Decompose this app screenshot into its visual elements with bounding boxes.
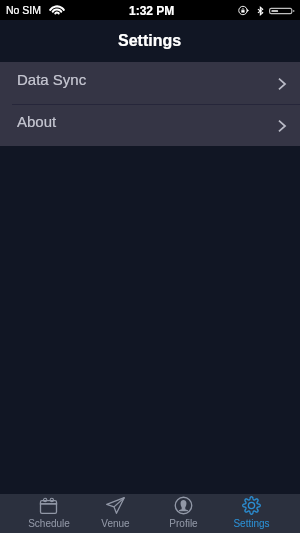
button[interactable]: Schedule xyxy=(15,494,82,533)
button[interactable]: Data Sync xyxy=(0,62,300,104)
staticText: 1:32 PM xyxy=(129,4,175,17)
staticText: Settings xyxy=(118,32,182,50)
button[interactable]: About xyxy=(0,104,300,146)
staticText: No SIM xyxy=(6,4,42,16)
staticText: Venue xyxy=(101,518,130,529)
button[interactable]: Settings xyxy=(217,494,285,533)
staticText: Data Sync xyxy=(17,71,87,88)
staticText: About xyxy=(17,113,57,130)
staticText: Schedule xyxy=(28,518,70,529)
button[interactable]: Profile xyxy=(149,494,217,533)
staticText: Settings xyxy=(233,518,270,529)
button[interactable]: Venue xyxy=(82,494,149,533)
staticText: Profile xyxy=(169,518,198,529)
